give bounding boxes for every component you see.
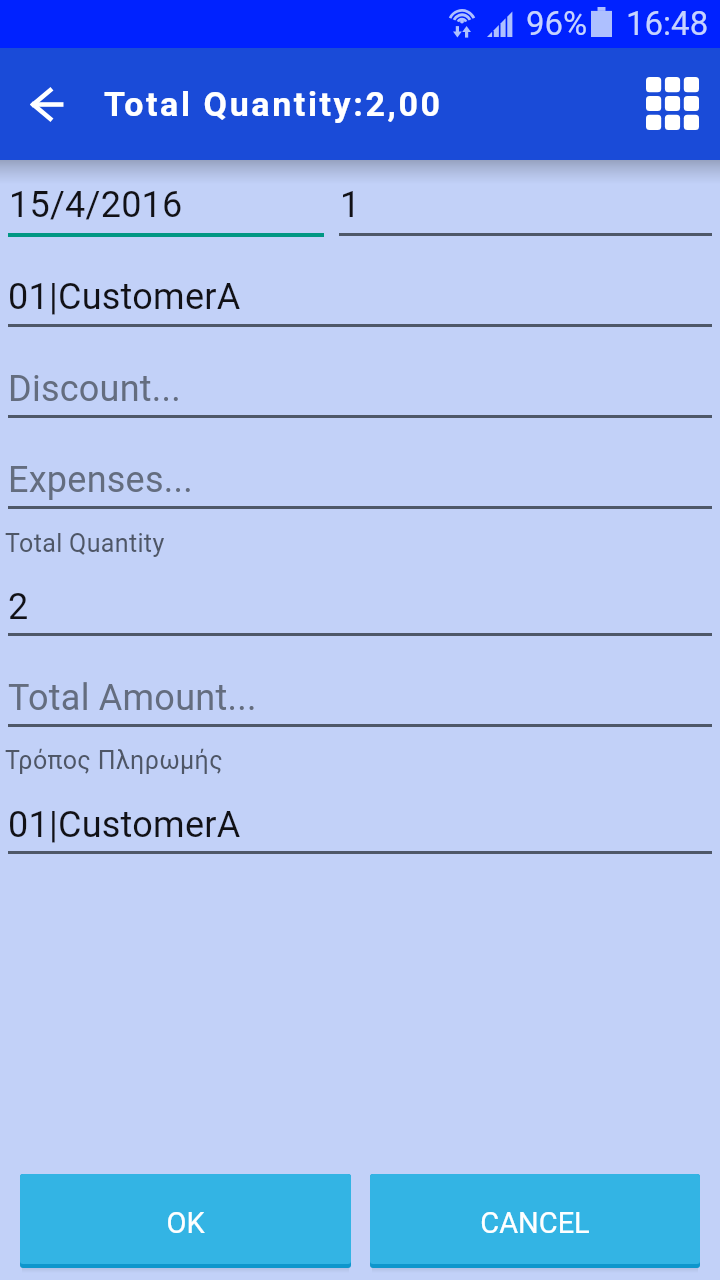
button[interactable]: Back	[17, 74, 77, 134]
button[interactable]: Total Amount...	[0, 669, 712, 726]
staticText: 01|CustomerA	[8, 804, 241, 846]
staticText: 96%	[526, 4, 588, 43]
staticText: Discount...	[8, 368, 182, 410]
button[interactable]: 2	[0, 578, 712, 635]
staticText: Expenses...	[8, 459, 193, 501]
staticText: CANCEL	[480, 1206, 590, 1240]
button[interactable]: CANCEL	[370, 1174, 700, 1264]
staticText: 16:48	[626, 4, 709, 43]
button[interactable]: 15/4/2016	[0, 176, 330, 238]
staticText: 2	[8, 586, 29, 628]
button[interactable]: OK	[20, 1174, 351, 1264]
button[interactable]: 1	[332, 176, 712, 238]
staticText: Total Quantity	[5, 529, 165, 558]
button[interactable]: Grid view	[640, 72, 704, 136]
staticText: Total Amount...	[8, 677, 257, 719]
button[interactable]: 01|CustomerA	[0, 268, 712, 325]
button[interactable]: Discount...	[0, 360, 712, 417]
staticText: 1	[340, 184, 361, 226]
staticText: 01|CustomerA	[8, 276, 241, 318]
staticText: Total Quantity:2,00	[104, 84, 443, 124]
staticText: Τρόπος Πληρωμής	[5, 746, 223, 775]
button[interactable]: Expenses...	[0, 451, 712, 508]
staticText: 15/4/2016	[9, 184, 183, 226]
button[interactable]: 01|CustomerA	[0, 796, 712, 853]
staticText: OK	[166, 1206, 205, 1240]
